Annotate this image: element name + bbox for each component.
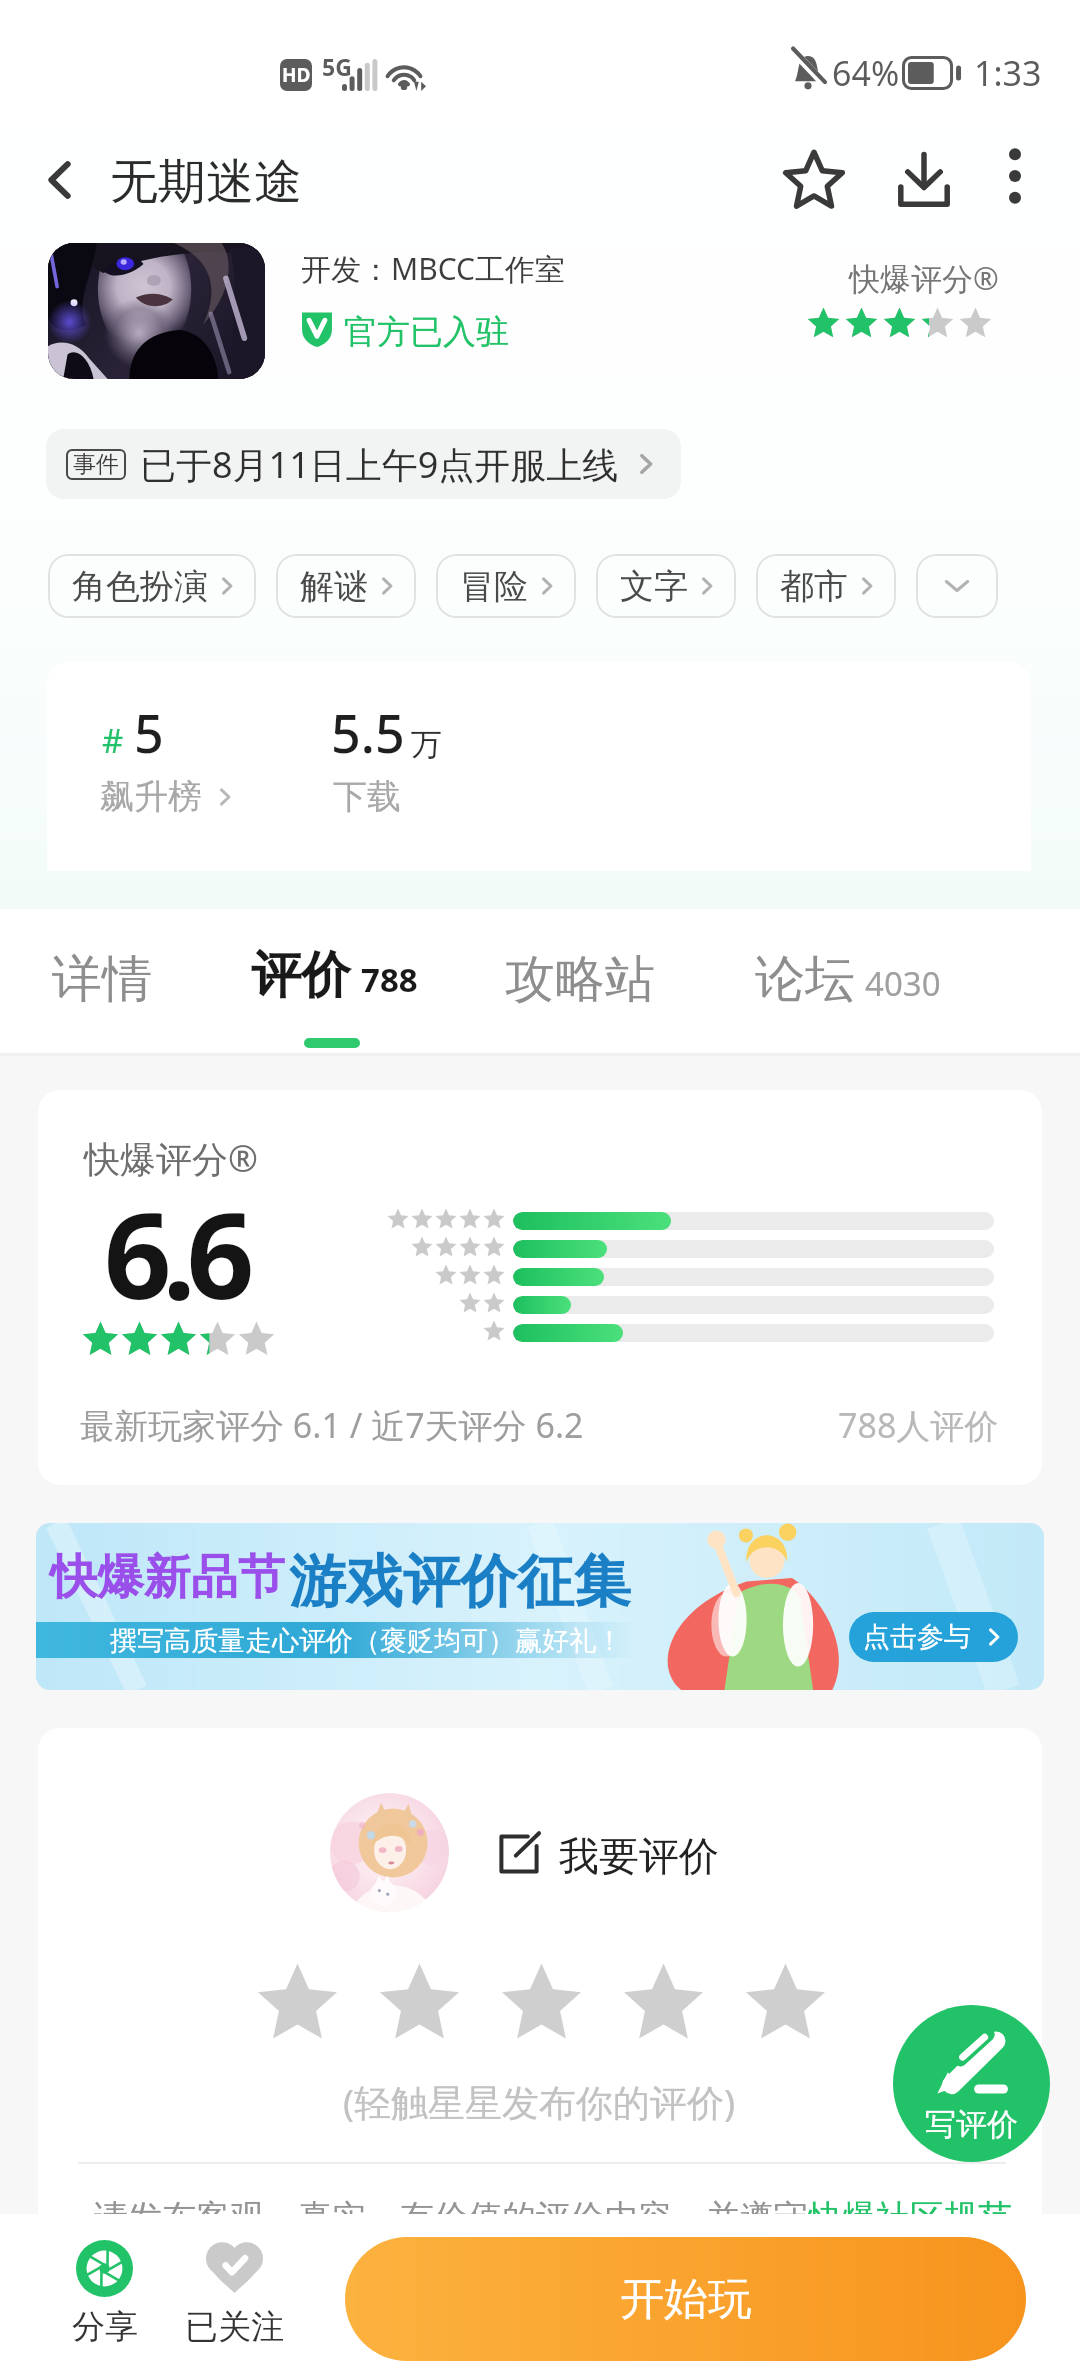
staticText: 文字 <box>620 565 688 608</box>
staticText: 官方已入驻 <box>344 311 509 353</box>
button[interactable]: 事件 <box>46 429 681 499</box>
staticText: 788 <box>361 957 418 1002</box>
staticText: 论坛 <box>755 948 855 1011</box>
staticText: 事件 <box>73 450 119 479</box>
staticText: 解谜 <box>300 565 368 608</box>
button[interactable]: 论坛 <box>755 948 941 1011</box>
staticText: 1:33 <box>974 50 1042 96</box>
staticText: 快爆评分® <box>84 1134 258 1183</box>
staticText: # <box>102 718 124 763</box>
button[interactable]: 评价 <box>251 944 418 1007</box>
staticText: 详情 <box>52 948 152 1011</box>
button[interactable]: 冒险 <box>436 554 576 618</box>
staticText: 分享 <box>72 2306 138 2344</box>
button[interactable]: More options <box>975 136 1055 216</box>
button[interactable]: 点击参与 <box>849 1612 1018 1662</box>
staticText: 角色扮演 <box>72 565 208 608</box>
staticText: 已关注 <box>185 2306 284 2345</box>
staticText: 冒险 <box>460 565 528 608</box>
staticText: (轻触星星发布你的评价) <box>343 2076 736 2127</box>
button[interactable]: 详情 <box>52 948 152 1011</box>
staticText: 开始玩 <box>620 2272 752 2327</box>
staticText: HD <box>282 62 311 88</box>
staticText: 点击参与 <box>863 1620 971 1654</box>
button[interactable]: 角色扮演 <box>48 554 256 618</box>
staticText: 5.5 <box>331 697 405 768</box>
staticText: 已于8月11日上午9点开服上线 <box>140 440 619 489</box>
staticText: 飙升榜 <box>100 775 202 818</box>
staticText: 6.6 <box>104 1173 246 1334</box>
button[interactable]: 文字 <box>596 554 736 618</box>
button[interactable]: 飙升榜 <box>100 775 236 818</box>
button[interactable]: Download <box>880 136 968 224</box>
button[interactable]: 开始玩 <box>345 2237 1026 2361</box>
staticText: 万 <box>411 725 442 764</box>
staticText: 都市 <box>780 565 848 608</box>
staticText: 4030 <box>865 961 941 1006</box>
staticText: 5G <box>322 51 352 82</box>
staticText: 撰写高质量走心评价（褒贬均可）赢好礼！ <box>110 1624 623 1658</box>
button[interactable]: 攻略站 <box>505 948 655 1011</box>
staticText: 我要评价 <box>559 1831 719 1881</box>
staticText: 无期迷途 <box>110 152 302 212</box>
button[interactable]: 已关注 <box>179 2241 289 2345</box>
staticText: 评价 <box>251 944 351 1007</box>
staticText: 快爆评分® <box>849 257 999 299</box>
staticText: 开发：MBCC工作室 <box>301 248 566 289</box>
staticText: 快爆社区规范 <box>808 2196 1012 2239</box>
button[interactable]: Expand tags <box>916 554 998 618</box>
button[interactable]: 都市 <box>756 554 896 618</box>
button[interactable]: Favorite <box>770 136 858 224</box>
staticText: 788人评价 <box>838 1402 999 1448</box>
button[interactable]: 分享 <box>48 2240 161 2344</box>
staticText: 攻略站 <box>505 948 655 1011</box>
staticText: 快爆新品节 <box>50 1548 285 1607</box>
staticText: 5 <box>134 697 164 768</box>
staticText: 请发布客观、真实、有价值的评价内容，并遵守 <box>94 2196 808 2239</box>
button[interactable]: 解谜 <box>276 554 416 618</box>
button[interactable]: Back <box>20 140 100 220</box>
button[interactable]: 写评价 <box>893 2005 1050 2162</box>
staticText: 游戏评价征集 <box>289 1546 631 1618</box>
button[interactable]: 快爆新品节 <box>36 1523 1044 1690</box>
staticText: 写评价 <box>925 2105 1018 2144</box>
staticText: 最新玩家评分 6.1 / 近7天评分 6.2 <box>80 1402 584 1448</box>
staticText: 64% <box>832 50 900 96</box>
staticText: 下载 <box>333 775 401 818</box>
